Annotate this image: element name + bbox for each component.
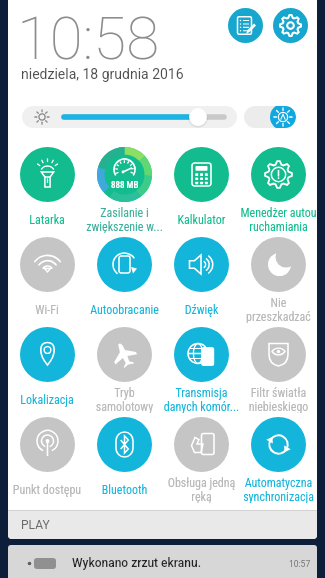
button[interactable]: Auto brightness bbox=[244, 106, 296, 128]
button[interactable]: Wi-Fi bbox=[8, 237, 86, 323]
staticText: PLAY bbox=[21, 518, 50, 532]
staticText: Filtr światła niebieskiego bbox=[240, 386, 317, 413]
staticText: Tryb samolotowy bbox=[86, 386, 163, 413]
staticText: niedziela, 18 grudnia 2016 bbox=[21, 66, 184, 82]
staticText: Zasilanie i zwiększenie w... bbox=[86, 206, 163, 233]
staticText: Menedżer autou ruchamiania bbox=[240, 206, 317, 233]
button[interactable]: 888 MB bbox=[86, 147, 163, 233]
button[interactable]: Transmisja danych komór... bbox=[163, 327, 240, 413]
button[interactable]: Wykonano zrzut ekranu. bbox=[8, 545, 317, 578]
button[interactable]: Menedżer autou ruchamiania bbox=[240, 147, 317, 233]
button[interactable]: Dźwięk bbox=[163, 237, 240, 323]
staticText: Transmisja danych komór... bbox=[163, 386, 240, 413]
staticText: Latarka bbox=[8, 213, 86, 227]
staticText: Automatyczna synchronizacja bbox=[240, 476, 317, 503]
button[interactable]: PLAY bbox=[8, 510, 317, 539]
button[interactable]: Automatyczna synchronizacja bbox=[240, 417, 317, 503]
staticText: Dźwięk bbox=[163, 303, 240, 317]
staticText: Wi-Fi bbox=[8, 303, 86, 317]
staticText: 888 MB bbox=[111, 180, 139, 191]
staticText: Lokalizacja bbox=[8, 393, 86, 407]
button[interactable]: Brightness bbox=[22, 106, 237, 128]
staticText: 10:58 bbox=[17, 3, 160, 73]
button[interactable]: Punkt dostępu bbox=[8, 417, 86, 503]
staticText: Nie przeszkadzać bbox=[240, 296, 317, 323]
staticText: Wykonano zrzut ekranu. bbox=[72, 556, 201, 570]
staticText: Obsługa jedną ręką bbox=[163, 476, 240, 503]
staticText: Kalkulator bbox=[163, 213, 240, 227]
button[interactable]: Bluetooth bbox=[86, 417, 163, 503]
button[interactable]: Kalkulator bbox=[163, 147, 240, 233]
button[interactable]: Latarka bbox=[8, 147, 86, 233]
button[interactable]: Lokalizacja bbox=[8, 327, 86, 413]
staticText: 10:57 bbox=[289, 559, 311, 569]
staticText: Bluetooth bbox=[86, 483, 163, 497]
button[interactable]: Obsługa jedną ręką bbox=[163, 417, 240, 503]
staticText: Punkt dostępu bbox=[8, 483, 86, 497]
button[interactable]: Nie przeszkadzać bbox=[240, 237, 317, 323]
button[interactable]: Tryb samolotowy bbox=[86, 327, 163, 413]
staticText: Autoobracanie bbox=[86, 303, 163, 317]
button[interactable]: Edit quick settings bbox=[228, 8, 263, 43]
button[interactable]: Settings bbox=[273, 8, 308, 43]
button[interactable]: Filtr światła niebieskiego bbox=[240, 327, 317, 413]
button[interactable]: Autoobracanie bbox=[86, 237, 163, 323]
